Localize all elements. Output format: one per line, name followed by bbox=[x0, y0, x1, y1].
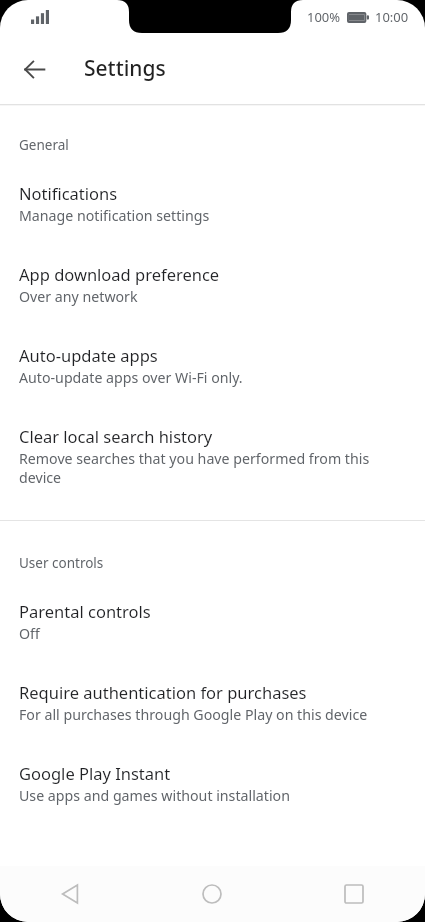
button[interactable]: Clear local search history bbox=[0, 425, 425, 487]
staticText: Parental controls bbox=[19, 600, 151, 622]
staticText: 100% bbox=[307, 8, 341, 26]
staticText: General bbox=[19, 136, 69, 154]
staticText: User controls bbox=[19, 554, 104, 572]
staticText: Google Play Instant bbox=[19, 762, 171, 784]
staticText: Settings bbox=[84, 54, 166, 83]
staticText: Over any network bbox=[19, 287, 138, 306]
button[interactable]: App download preference bbox=[0, 263, 425, 306]
button[interactable]: Auto-update apps bbox=[0, 344, 425, 387]
button[interactable]: Google Play Instant bbox=[0, 762, 425, 805]
button[interactable]: Require authentication for purchases bbox=[0, 681, 425, 724]
staticText: Clear local search history bbox=[19, 425, 213, 447]
staticText: Auto-update apps over Wi-Fi only. bbox=[19, 368, 243, 387]
button[interactable]: Back bbox=[0, 866, 141, 922]
staticText: 10:00 bbox=[375, 8, 409, 26]
staticText: Require authentication for purchases bbox=[19, 681, 307, 703]
staticText: Manage notification settings bbox=[19, 206, 210, 225]
staticText: For all purchases through Google Play on… bbox=[19, 705, 368, 724]
staticText: Remove searches that you have performed … bbox=[19, 449, 403, 487]
button[interactable]: Back bbox=[15, 50, 53, 88]
button[interactable]: Home bbox=[141, 866, 283, 922]
button[interactable]: Notifications bbox=[0, 182, 425, 225]
staticText: Off bbox=[19, 624, 40, 643]
staticText: Notifications bbox=[19, 182, 118, 204]
button[interactable]: Parental controls bbox=[0, 600, 425, 643]
staticText: App download preference bbox=[19, 263, 220, 285]
staticText: Auto-update apps bbox=[19, 344, 158, 366]
staticText: Use apps and games without installation bbox=[19, 786, 290, 805]
button[interactable]: Recent apps bbox=[283, 866, 425, 922]
